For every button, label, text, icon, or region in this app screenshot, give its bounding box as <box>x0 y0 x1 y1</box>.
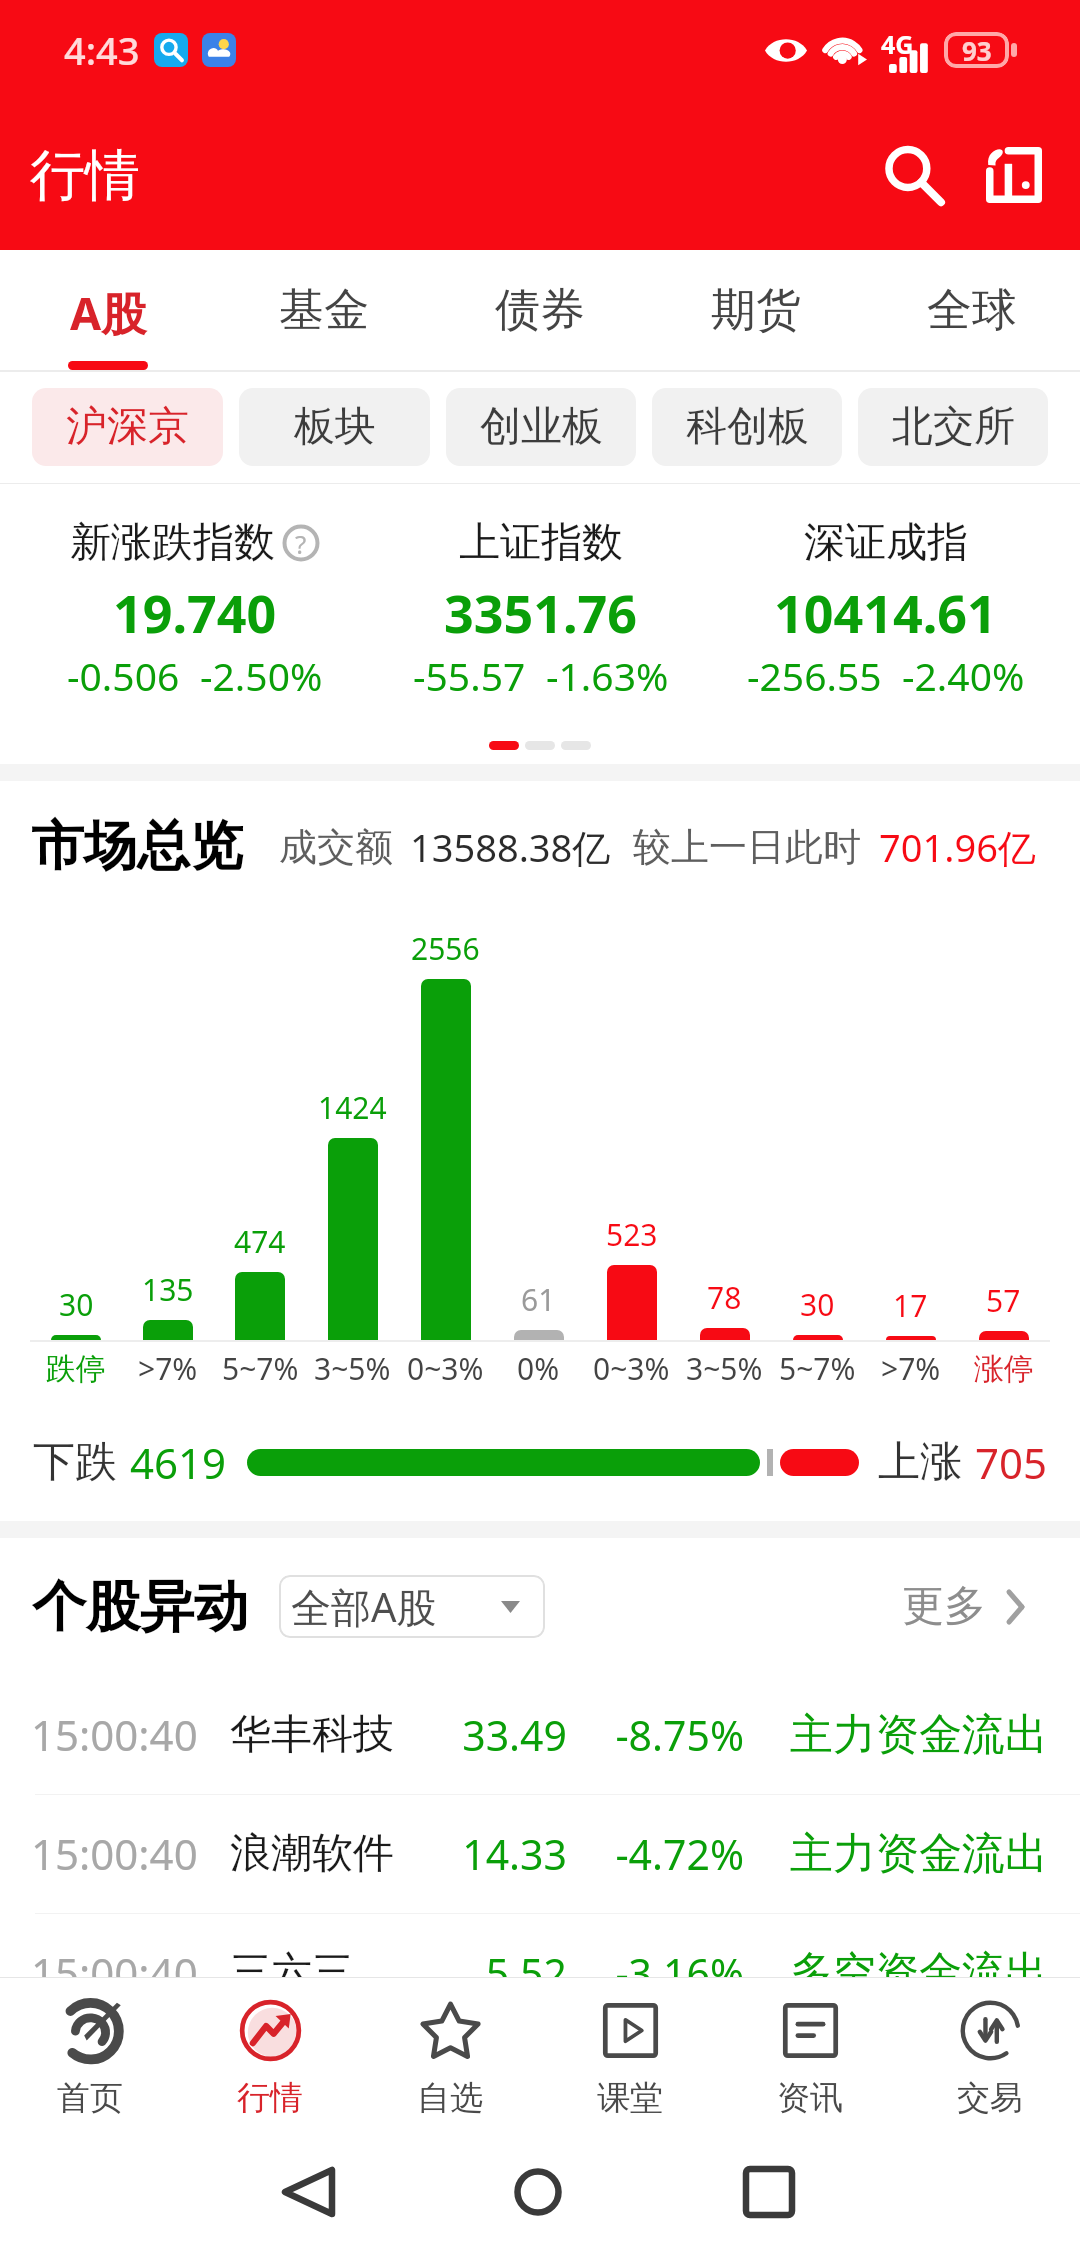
button[interactable]: 更多 <box>894 1570 1052 1643</box>
staticText: 科创板 <box>686 401 809 453</box>
staticText: 自选 <box>417 2077 483 2119</box>
staticText: 行情 <box>237 2077 303 2119</box>
staticText: -1.63% <box>546 649 669 702</box>
staticText: 创业板 <box>480 401 603 453</box>
staticText: 成交额 <box>279 823 393 871</box>
button[interactable]: 返回 <box>248 2135 368 2244</box>
staticText: 3351.76 <box>444 577 638 648</box>
staticText: 19.740 <box>113 577 277 648</box>
staticText: 0~3% <box>593 1348 670 1389</box>
staticText: 0~3% <box>407 1348 484 1389</box>
staticText: 沪深京 <box>66 401 189 453</box>
staticText: -55.57 <box>413 649 526 702</box>
staticText: 全部A股 <box>291 1579 437 1634</box>
staticText: -8.75% <box>607 1707 744 1763</box>
button[interactable]: 自选股 <box>958 100 1070 250</box>
staticText: ? <box>295 526 307 561</box>
staticText: 5~7% <box>222 1348 299 1389</box>
staticText: 资讯 <box>777 2077 843 2119</box>
staticText: 10414.61 <box>774 577 997 648</box>
staticText: -2.50% <box>200 649 323 702</box>
staticText: 跌停 <box>46 1350 106 1388</box>
button[interactable]: 北交所 <box>858 388 1048 466</box>
staticText: 1424 <box>318 1087 387 1128</box>
button[interactable]: 债券 <box>432 250 648 372</box>
staticText: 4G <box>881 27 914 61</box>
staticText: 交易 <box>957 2077 1023 2119</box>
button[interactable]: A股 <box>0 250 216 372</box>
staticText: 4619 <box>130 1434 227 1491</box>
staticText: 基金 <box>279 282 369 339</box>
button[interactable]: 首页 <box>0 1978 180 2130</box>
staticText: 较上一日此时 <box>633 823 861 871</box>
staticText: 行情 <box>30 141 140 210</box>
staticText: 期货 <box>711 282 801 339</box>
staticText: 17 <box>893 1285 928 1326</box>
staticText: 板块 <box>294 401 376 453</box>
staticText: 课堂 <box>597 2077 663 2119</box>
button[interactable]: 期货 <box>648 250 864 372</box>
staticText: 30 <box>59 1284 94 1325</box>
staticText: 北交所 <box>892 401 1015 453</box>
button[interactable]: 15:00:40 <box>0 1794 1080 1913</box>
button[interactable]: 科创板 <box>652 388 842 466</box>
staticText: 705 <box>975 1434 1048 1491</box>
staticText: 上涨 <box>878 1436 962 1489</box>
staticText: 首页 <box>57 2077 123 2119</box>
button[interactable]: 全部A股 <box>279 1575 545 1638</box>
staticText: 三六三 <box>230 1947 353 1977</box>
staticText: -256.55 <box>747 649 882 702</box>
staticText: 93 <box>962 33 992 68</box>
staticText: 3~5% <box>314 1348 391 1389</box>
button[interactable]: 新涨跌指数 <box>22 484 368 726</box>
staticText: >7% <box>881 1348 941 1389</box>
staticText: 15:00:40 <box>31 1706 198 1763</box>
staticText: 15:00:40 <box>31 1825 198 1882</box>
button[interactable]: 创业板 <box>446 388 636 466</box>
button[interactable]: 板块 <box>239 388 430 466</box>
staticText: 57 <box>986 1280 1021 1321</box>
staticText: 债券 <box>495 282 585 339</box>
staticText: 135 <box>142 1269 194 1310</box>
staticText: 主力资金流出 <box>776 1708 1048 1762</box>
staticText: 华丰科技 <box>230 1709 394 1761</box>
button[interactable]: 基金 <box>216 250 432 372</box>
staticText: 更多 <box>902 1580 986 1633</box>
staticText: 701.96亿 <box>879 821 1036 873</box>
staticText: 多空资金流出 <box>776 1946 1048 1977</box>
staticText: -3.16% <box>607 1945 744 1977</box>
staticText: 市场总览 <box>31 813 243 880</box>
button[interactable]: 行情 <box>180 1978 360 2130</box>
staticText: 浪潮软件 <box>230 1828 394 1880</box>
button[interactable]: 交易 <box>900 1978 1080 2130</box>
button[interactable]: 最近任务 <box>709 2135 829 2244</box>
button[interactable]: 全球 <box>864 250 1080 372</box>
button[interactable]: 沪深京 <box>32 388 223 466</box>
staticText: -0.506 <box>67 649 180 702</box>
button[interactable]: 搜索 <box>856 100 974 250</box>
staticText: 4:43 <box>64 24 140 76</box>
button[interactable]: 主页 <box>478 2135 598 2244</box>
staticText: 下跌 <box>33 1436 117 1489</box>
button[interactable]: 15:00:40 <box>0 1675 1080 1794</box>
staticText: 13588.38亿 <box>410 821 611 873</box>
staticText: 上证指数 <box>459 517 623 569</box>
button[interactable]: 上证指数 <box>368 484 713 726</box>
staticText: 33.49 <box>424 1707 567 1763</box>
staticText: 涨停 <box>974 1350 1034 1388</box>
staticText: 5~7% <box>779 1348 856 1389</box>
button[interactable]: 自选 <box>360 1978 540 2130</box>
staticText: 3~5% <box>686 1348 763 1389</box>
staticText: -4.72% <box>607 1826 744 1882</box>
staticText: A股 <box>70 282 147 343</box>
button[interactable]: 资讯 <box>720 1978 900 2130</box>
staticText: 主力资金流出 <box>776 1827 1048 1881</box>
staticText: 新涨跌指数 <box>70 517 275 569</box>
staticText: 78 <box>707 1277 742 1318</box>
button[interactable]: 课堂 <box>540 1978 720 2130</box>
button[interactable]: 15:00:40 <box>0 1913 1080 1977</box>
button[interactable]: 深证成指 <box>713 484 1058 726</box>
staticText: 61 <box>521 1279 556 1320</box>
staticText: 深证成指 <box>804 517 968 569</box>
staticText: >7% <box>138 1348 198 1389</box>
